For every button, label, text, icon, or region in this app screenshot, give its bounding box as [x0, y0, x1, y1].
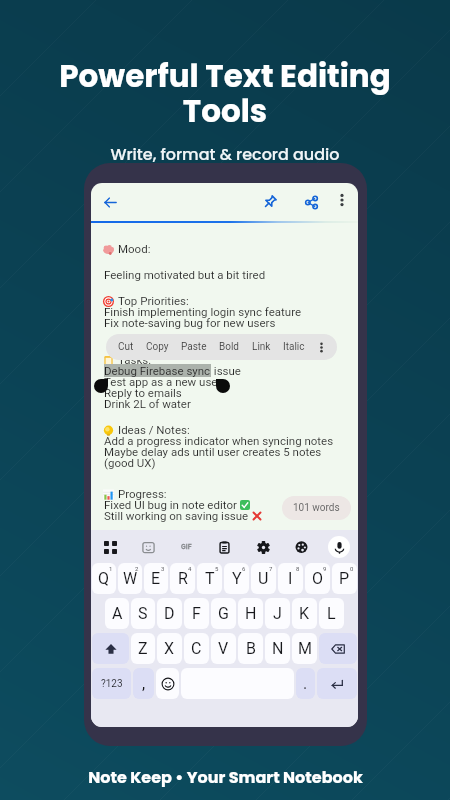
- staticText: .: [303, 674, 308, 693]
- button[interactable]: Link: [246, 334, 277, 360]
- button[interactable]: T: [197, 563, 222, 594]
- button[interactable]: Backspace: [319, 633, 357, 664]
- staticText: K: [299, 604, 310, 623]
- staticText: (good UX): [104, 456, 156, 469]
- staticText: M: [298, 639, 312, 658]
- button[interactable]: M: [292, 633, 317, 664]
- staticText: Top Priorities:: [118, 294, 189, 307]
- button[interactable]: Italic: [277, 334, 311, 360]
- button[interactable]: P: [332, 563, 357, 594]
- staticText: H: [245, 604, 257, 623]
- staticText: Note Keep • Your Smart Notebook: [88, 766, 363, 788]
- button[interactable]: K: [292, 598, 317, 629]
- button[interactable]: .: [296, 668, 315, 699]
- button[interactable]: U: [251, 563, 276, 594]
- staticText: Ideas / Notes:: [118, 423, 190, 436]
- staticText: Q: [98, 569, 110, 588]
- button[interactable]: Paste: [175, 334, 213, 360]
- button[interactable]: G: [211, 598, 236, 629]
- staticText: Mood:: [118, 242, 151, 255]
- staticText: 9: [323, 565, 327, 572]
- staticText: X: [164, 639, 175, 658]
- staticText: Test app as a new user: [104, 375, 222, 388]
- button[interactable]: Apps: [99, 536, 121, 558]
- staticText: Reply to emails: [104, 386, 182, 399]
- button[interactable]: A: [105, 598, 129, 629]
- staticText: Finish implementing login sync feature: [104, 305, 302, 318]
- button[interactable]: F: [184, 598, 209, 629]
- staticText: 2: [135, 565, 139, 572]
- button[interactable]: D: [157, 598, 182, 629]
- staticText: Bold: [219, 341, 240, 353]
- staticText: Copy: [146, 341, 169, 353]
- button[interactable]: Y: [224, 563, 249, 594]
- staticText: S: [138, 604, 148, 623]
- staticText: Paste: [181, 341, 207, 353]
- button[interactable]: R: [170, 563, 195, 594]
- staticText: B: [246, 639, 256, 658]
- button[interactable]: Shift: [92, 633, 129, 664]
- staticText: Powerful Text Editing Tools: [55, 54, 395, 133]
- staticText: Fix note-saving bug for new users: [104, 316, 276, 329]
- button[interactable]: More options: [330, 188, 354, 212]
- button[interactable]: O: [305, 563, 330, 594]
- staticText: Cut: [118, 341, 134, 353]
- staticText: W: [123, 569, 138, 588]
- staticText: I: [288, 569, 293, 588]
- button[interactable]: Pin note: [256, 188, 284, 216]
- staticText: C: [191, 639, 202, 658]
- staticText: R: [178, 569, 188, 588]
- button[interactable]: Z: [131, 633, 155, 664]
- button[interactable]: B: [238, 633, 263, 664]
- button[interactable]: Share: [297, 188, 325, 216]
- button[interactable]: 101 words: [282, 496, 351, 520]
- staticText: N: [272, 639, 284, 658]
- button[interactable]: Emoji: [156, 668, 179, 699]
- button[interactable]: More actions: [311, 334, 331, 360]
- button[interactable]: J: [265, 598, 290, 629]
- button[interactable]: Stickers: [137, 536, 159, 558]
- button[interactable]: Q: [92, 563, 116, 594]
- staticText: ,: [142, 674, 146, 693]
- button[interactable]: L: [319, 598, 344, 629]
- button[interactable]: H: [238, 598, 263, 629]
- staticText: 7: [269, 565, 273, 572]
- staticText: 1: [109, 565, 113, 572]
- button[interactable]: X: [157, 633, 182, 664]
- button[interactable]: Settings: [252, 536, 274, 558]
- staticText: Z: [138, 639, 148, 658]
- button[interactable]: Enter: [317, 668, 357, 699]
- button[interactable]: Back: [96, 188, 124, 216]
- button[interactable]: Bold: [213, 334, 246, 360]
- button[interactable]: W: [118, 563, 142, 594]
- button[interactable]: ?123: [92, 668, 131, 699]
- button[interactable]: Voice input: [328, 536, 350, 558]
- staticText: V: [218, 639, 229, 658]
- staticText: Tasks:: [118, 353, 151, 366]
- button[interactable]: GIF: [175, 536, 197, 558]
- button[interactable]: C: [184, 633, 209, 664]
- button[interactable]: V: [211, 633, 236, 664]
- staticText: A: [112, 604, 123, 623]
- staticText: Write, format & record audio: [110, 143, 340, 165]
- staticText: P: [339, 569, 350, 588]
- staticText: 6: [242, 565, 246, 572]
- button[interactable]: N: [265, 633, 290, 664]
- button[interactable]: Cut: [112, 334, 140, 360]
- staticText: Still working on saving issue: [104, 509, 252, 522]
- staticText: 4: [188, 565, 192, 572]
- button[interactable]: S: [131, 598, 155, 629]
- staticText: GIF: [181, 543, 192, 551]
- button[interactable]: Themes: [290, 536, 312, 558]
- button[interactable]: E: [144, 563, 168, 594]
- button[interactable]: Clipboard: [213, 536, 235, 558]
- staticText: issue: [211, 364, 241, 377]
- staticText: Italic: [283, 341, 305, 353]
- staticText: E: [151, 569, 161, 588]
- button[interactable]: I: [278, 563, 303, 594]
- staticText: 0: [350, 565, 354, 572]
- button[interactable]: Copy: [140, 334, 175, 360]
- button[interactable]: ,: [133, 668, 154, 699]
- staticText: Maybe delay ads until user creates 5 not…: [104, 445, 322, 458]
